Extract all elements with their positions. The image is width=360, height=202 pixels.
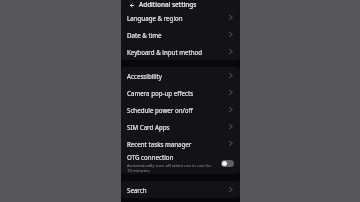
staticText: OTG connection: [127, 153, 174, 161]
staticText: Keyboard & input method: [127, 48, 203, 56]
staticText: Accessibility: [127, 72, 162, 80]
staticText: Camera pop-up effects: [127, 89, 194, 97]
staticText: Additional settings: [139, 0, 197, 9]
staticText: SIM Card Apps: [127, 123, 170, 131]
staticText: Automatically turn off when not in use f…: [127, 162, 217, 173]
button[interactable]: Keyboard & input method: [121, 43, 240, 60]
staticText: Recent tasks manager: [127, 140, 192, 148]
staticText: Date & time: [127, 31, 162, 39]
button[interactable]: Camera pop-up effects: [121, 84, 240, 101]
button[interactable]: Schedule power on/off: [121, 101, 240, 118]
button[interactable]: SIM Card Apps: [121, 118, 240, 135]
button[interactable]: OTG connection: [121, 152, 240, 174]
button[interactable]: OTG connection toggle, off: [221, 160, 234, 167]
button[interactable]: Language & region: [121, 9, 240, 26]
button[interactable]: Search: [121, 181, 240, 198]
button[interactable]: Back: [127, 1, 135, 9]
button[interactable]: Accessibility: [121, 67, 240, 84]
staticText: Search: [127, 186, 147, 194]
button[interactable]: Recent tasks manager: [121, 135, 240, 152]
button[interactable]: Date & time: [121, 26, 240, 43]
staticText: Schedule power on/off: [127, 106, 193, 114]
staticText: Language & region: [127, 14, 183, 22]
